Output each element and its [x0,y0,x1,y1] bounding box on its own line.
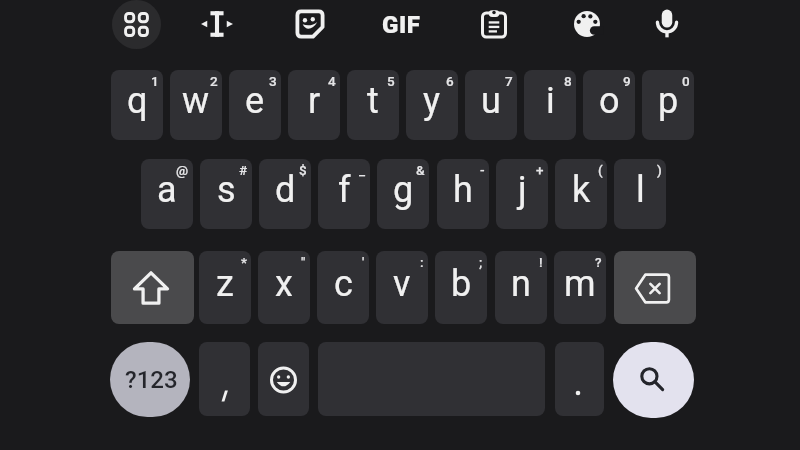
button[interactable] [555,342,604,416]
staticText: 1 [151,73,159,89]
staticText: 8 [564,73,572,89]
staticText: ( [598,162,603,178]
button[interactable]: Shift [111,251,194,324]
staticText: GIF [382,11,421,39]
staticText: x [275,263,293,305]
button[interactable]: e [229,70,281,140]
staticText: d [275,169,296,211]
staticText: z [216,263,234,305]
staticText: @ [176,162,189,178]
staticText: 3 [269,73,277,89]
button[interactable]: Toolbar menu [112,0,161,49]
staticText: v [393,263,411,305]
staticText: e [245,80,265,122]
button[interactable]: l [614,159,666,229]
staticText: 4 [328,73,336,89]
staticText: ; [479,254,483,270]
staticText: 2 [210,73,218,89]
staticText: o [599,80,620,122]
staticText: c [334,263,353,305]
staticText: " [301,254,306,270]
staticText: l [636,169,645,211]
staticText: a [157,169,177,211]
button[interactable]: Emoji [258,342,309,416]
staticText: 5 [387,73,395,89]
button[interactable]: m [554,251,606,324]
button[interactable]: o [583,70,635,140]
staticText: ! [539,254,543,270]
staticText: & [416,162,425,178]
button[interactable]: w [170,70,222,140]
staticText: 9 [623,73,631,89]
staticText: 6 [446,73,454,89]
button[interactable]: Themes [564,1,610,47]
button[interactable]: Voice input [644,1,690,47]
staticText: j [518,169,527,211]
button[interactable]: q [111,70,163,140]
staticText: k [572,169,591,211]
button[interactable]: Clipboard [471,2,517,48]
staticText: - [480,162,485,178]
staticText: h [453,169,473,211]
staticText: r [308,80,321,122]
staticText: b [451,263,472,305]
button[interactable]: h [437,159,489,229]
button[interactable]: a [141,159,193,229]
button[interactable]: Backspace [614,251,696,324]
staticText: ' [362,254,365,270]
button[interactable]: v [376,251,428,324]
staticText: s [217,169,236,211]
button[interactable]: Text editing [194,1,240,47]
button[interactable] [199,342,250,416]
staticText: w [182,80,210,122]
staticText: ?123 [125,366,178,394]
button[interactable]: t [347,70,399,140]
staticText: g [393,169,414,211]
staticText: q [127,80,148,122]
staticText: y [423,80,441,122]
staticText: m [564,263,596,305]
staticText: 0 [682,73,690,89]
button[interactable]: j [496,159,548,229]
staticText: ? [595,254,602,270]
button[interactable]: y [406,70,458,140]
staticText: t [367,80,379,122]
button[interactable]: c [317,251,369,324]
button[interactable]: Stickers [287,1,333,47]
button[interactable]: ?123 [110,342,190,417]
button[interactable]: x [258,251,310,324]
staticText: 7 [505,73,513,89]
staticText: u [481,80,501,122]
staticText: # [239,162,248,178]
button[interactable]: p [642,70,694,140]
button[interactable]: k [555,159,607,229]
staticText: + [536,162,544,178]
button[interactable]: g [377,159,429,229]
staticText: p [658,80,679,122]
staticText: f [338,169,351,211]
staticText: * [241,254,247,270]
staticText: : [420,254,424,270]
button[interactable]: n [495,251,547,324]
staticText: $ [299,162,307,178]
button[interactable]: Search [613,342,694,418]
button[interactable]: i [524,70,576,140]
button[interactable]: z [199,251,251,324]
button[interactable]: r [288,70,340,140]
staticText: n [511,263,531,305]
button[interactable]: d [259,159,311,229]
staticText: i [546,80,555,122]
staticText: _ [359,162,366,178]
button[interactable]: s [200,159,252,229]
button[interactable]: GIF [377,2,425,47]
button[interactable]: f [318,159,370,229]
button[interactable]: u [465,70,517,140]
button[interactable]: b [435,251,487,324]
staticText: ) [657,162,662,178]
